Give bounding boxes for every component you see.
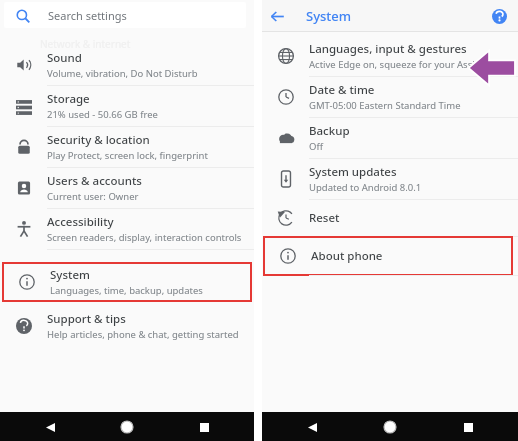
staticText: Date & time <box>309 82 375 98</box>
button[interactable]: Accessibility <box>0 209 254 249</box>
staticText: About phone <box>311 248 383 264</box>
staticText: Backup <box>309 123 350 139</box>
staticText: Support & tips <box>47 311 126 327</box>
staticText: Accessibility <box>47 214 114 230</box>
staticText: Storage <box>47 91 90 107</box>
button[interactable]: Security & location <box>0 127 254 167</box>
button[interactable]: Languages, input & gestures <box>262 36 518 76</box>
button[interactable]: Reset <box>262 200 518 236</box>
button[interactable]: Recents <box>455 414 481 440</box>
staticText: Network & internet <box>40 37 131 51</box>
staticText: Screen readers, display, interaction con… <box>47 231 242 244</box>
staticText: 21% used - 50.66 GB free <box>47 108 158 121</box>
staticText: System updates <box>309 164 397 180</box>
staticText: Sound <box>47 50 82 66</box>
button[interactable]: Sound <box>0 45 254 85</box>
staticText: Search settings <box>48 8 127 23</box>
button[interactable]: Storage <box>0 86 254 126</box>
button[interactable]: Backup <box>262 118 518 158</box>
staticText: Off <box>309 140 323 153</box>
button[interactable]: Users & accounts <box>0 168 254 208</box>
staticText: Security & location <box>47 132 150 148</box>
button[interactable]: Date & time <box>262 77 518 117</box>
staticText: Volume, vibration, Do Not Disturb <box>47 67 198 80</box>
staticText: Reset <box>309 210 340 226</box>
staticText: Current user: Owner <box>47 190 139 203</box>
button[interactable]: Back <box>37 414 63 440</box>
staticText: System <box>50 267 90 283</box>
staticText: Help articles, phone & chat, getting sta… <box>47 328 239 341</box>
button[interactable]: Support & tips <box>0 306 254 346</box>
staticText: Languages, input & gestures <box>309 41 467 57</box>
button[interactable]: Back <box>299 414 325 440</box>
staticText: Active Edge on, squeeze for your Assista… <box>309 58 498 71</box>
staticText: Languages, time, backup, updates <box>50 284 203 297</box>
button[interactable]: Recents <box>191 414 217 440</box>
button[interactable]: Search settings <box>4 2 246 28</box>
button[interactable]: Home <box>114 414 140 440</box>
button[interactable]: Help <box>484 1 514 31</box>
staticText: GMT-05:00 Eastern Standard Time <box>309 99 461 112</box>
button[interactable]: Home <box>377 414 403 440</box>
button[interactable]: Back <box>262 1 292 31</box>
staticText: System <box>306 7 352 25</box>
staticText: Users & accounts <box>47 173 142 189</box>
staticText: Updated to Android 8.0.1 <box>309 181 422 194</box>
button[interactable]: System <box>3 263 251 301</box>
button[interactable]: System updates <box>262 159 518 199</box>
button[interactable]: About phone <box>264 237 512 275</box>
staticText: Play Protect, screen lock, fingerprint <box>47 149 208 162</box>
